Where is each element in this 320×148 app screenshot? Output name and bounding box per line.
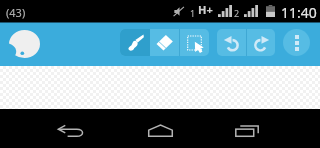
button[interactable]: Undo [217, 29, 246, 56]
staticText: 1 [190, 7, 196, 19]
staticText: H+ [198, 2, 213, 17]
staticText: 11:40 [281, 3, 317, 22]
button[interactable]: Home [138, 109, 182, 148]
button[interactable]: Palette [6, 22, 43, 65]
staticText: (43) [6, 5, 26, 20]
button[interactable]: Recents [225, 109, 269, 148]
staticText: 2 [234, 7, 240, 19]
button[interactable]: Eraser [150, 29, 179, 56]
button[interactable]: Brush [120, 29, 150, 56]
button[interactable]: Back [48, 109, 92, 148]
button[interactable]: Select [180, 29, 209, 56]
button[interactable]: More options [283, 29, 310, 56]
button[interactable]: Redo [247, 29, 275, 56]
